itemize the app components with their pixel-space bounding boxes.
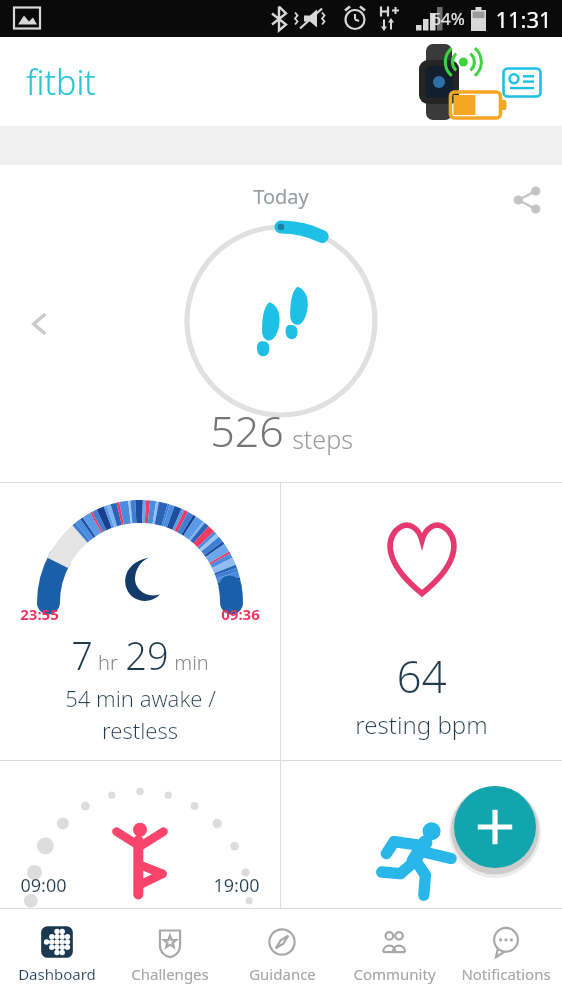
button[interactable]: fitbit [26, 59, 96, 105]
button[interactable]: 09:00 [0, 761, 280, 908]
staticText: 7 [71, 629, 93, 681]
button[interactable]: Fitbit device, connected, battery [410, 54, 496, 110]
button[interactable]: Notifications [450, 909, 562, 999]
button[interactable]: Share [502, 175, 552, 225]
button[interactable]: Account [500, 60, 544, 104]
staticText: hr [98, 649, 118, 676]
button[interactable]: Log activity [451, 783, 539, 871]
button[interactable]: Guidance [226, 909, 338, 999]
staticText: 23:55 [20, 604, 59, 624]
staticText: Dashboard [18, 964, 96, 984]
staticText: Community [353, 964, 436, 984]
staticText: Today [253, 183, 309, 210]
staticText: steps [292, 422, 353, 456]
button[interactable]: 64 [281, 483, 562, 760]
staticText: Challenges [131, 964, 209, 984]
staticText: 64% [431, 7, 465, 30]
button[interactable]: 23:55 [0, 483, 280, 760]
staticText: 526 [210, 401, 284, 460]
button[interactable]: Community [338, 909, 450, 999]
staticText: 19:00 [213, 873, 260, 898]
staticText: 09:00 [20, 873, 67, 898]
staticText: Guidance [249, 964, 316, 984]
staticText: 64 [396, 646, 447, 706]
button[interactable]: Dashboard [0, 909, 113, 999]
staticText: 09:36 [221, 604, 260, 624]
staticText: fitbit [26, 59, 96, 105]
staticText: resting bpm [355, 708, 488, 741]
button[interactable]: Steps progress [178, 218, 384, 424]
staticText: min [174, 649, 209, 676]
button[interactable]: Log activity [281, 761, 562, 908]
staticText: 54 min awake / [65, 683, 216, 713]
staticText: restless [102, 715, 178, 745]
staticText: 11:31 [495, 4, 552, 34]
button[interactable]: Previous day [16, 300, 64, 348]
staticText: 29 [125, 629, 169, 681]
staticText: Notifications [461, 964, 551, 984]
button[interactable]: Challenges [113, 909, 226, 999]
